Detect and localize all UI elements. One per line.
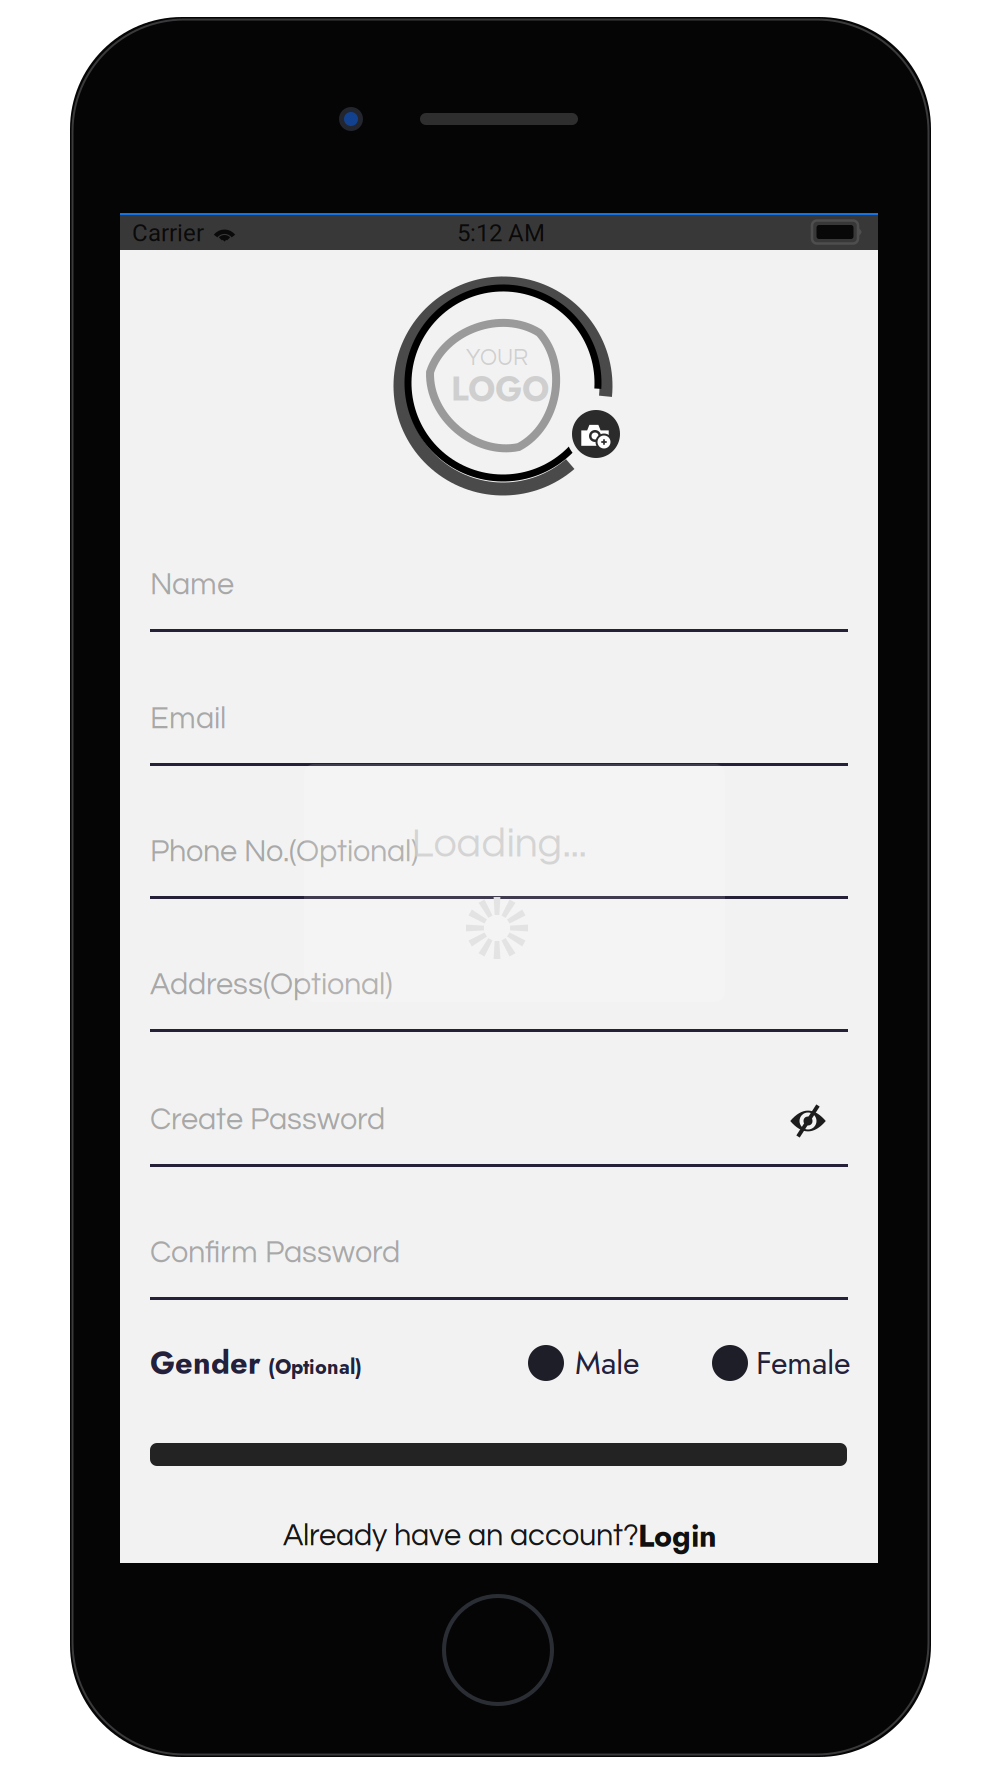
- staticText: LOGO: [451, 365, 549, 413]
- staticText: Carrier: [132, 219, 204, 247]
- button[interactable]: Add profile photo: [0, 0, 1000, 1778]
- staticText: 5:12 AM: [457, 219, 545, 247]
- staticText: Gender: [150, 1341, 261, 1385]
- staticText: (Optional): [268, 1352, 362, 1381]
- button[interactable]: Already have an account?: [0, 0, 1000, 1778]
- staticText: Loading...: [411, 823, 586, 865]
- staticText: Email: [150, 703, 226, 735]
- staticText: Login: [638, 1514, 717, 1558]
- staticText: Confirm Password: [150, 1237, 400, 1269]
- staticText: Create Password: [150, 1104, 385, 1136]
- staticText: Name: [150, 569, 234, 601]
- staticText: Already have an account?: [283, 1520, 639, 1552]
- staticText: Female: [756, 1340, 850, 1386]
- button[interactable]: Female: [0, 0, 1000, 1778]
- button[interactable]: Show password: [0, 0, 1000, 1778]
- staticText: YOUR: [466, 346, 528, 370]
- button[interactable]: Sign up: [0, 0, 1000, 1778]
- staticText: Phone No.(Optional): [150, 836, 419, 868]
- staticText: Male: [575, 1340, 639, 1386]
- button[interactable]: Male: [0, 0, 1000, 1778]
- staticText: Address(Optional): [150, 969, 393, 1001]
